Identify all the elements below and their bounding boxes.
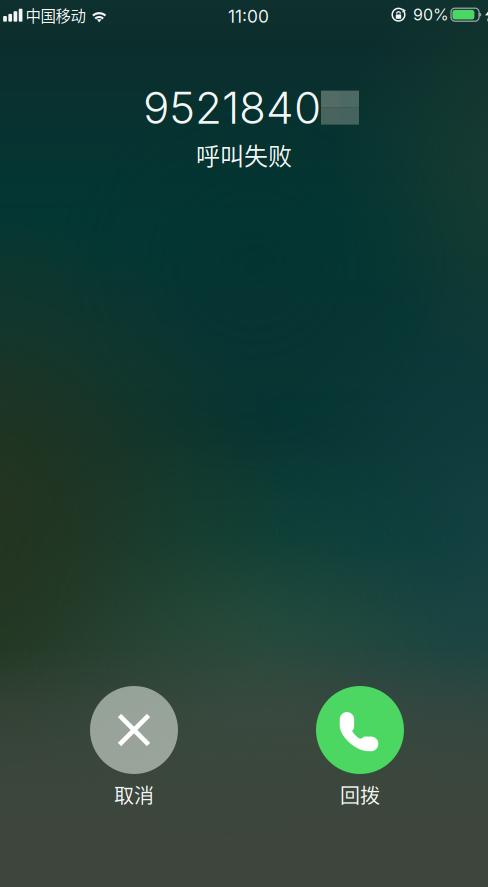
button[interactable]: 取消 xyxy=(90,686,178,809)
staticText: 回拨 xyxy=(340,780,380,809)
staticText: 11:00 xyxy=(228,6,269,27)
staticText: 取消 xyxy=(114,780,154,809)
staticText: 9521840 xyxy=(143,81,321,134)
staticText: 中国移动 xyxy=(26,4,86,26)
staticText: 90% xyxy=(413,5,449,24)
staticText: 呼叫失败 xyxy=(196,137,292,172)
button[interactable]: 回拨 xyxy=(316,686,404,809)
